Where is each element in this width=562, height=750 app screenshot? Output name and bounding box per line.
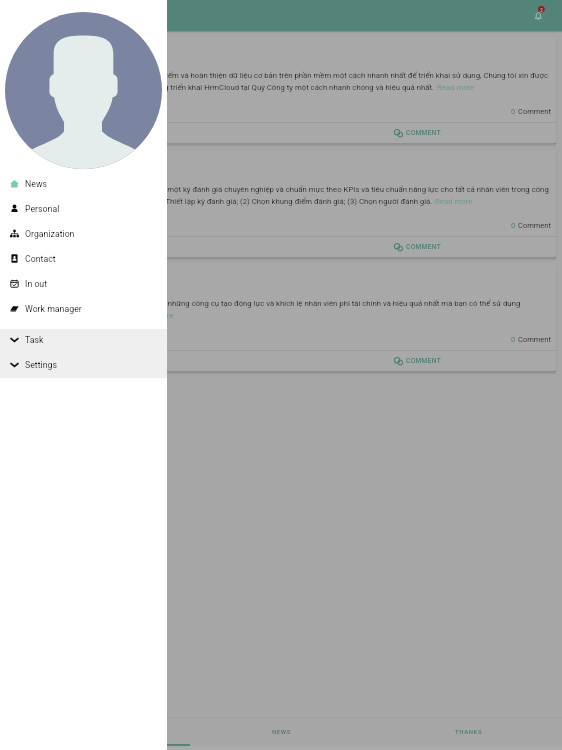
staticText: 0: [511, 221, 518, 230]
staticText: NEWS: [272, 728, 291, 735]
staticText: 0: [511, 335, 518, 344]
staticText: Để hỗ trợ Quý Khách hàng xây dựng được m…: [23, 185, 556, 194]
staticText: Work manager: [25, 304, 82, 314]
button[interactable]: Settings: [0, 352, 167, 377]
staticText: Comment: [518, 335, 551, 344]
button[interactable]: Contact: [0, 246, 167, 271]
button[interactable]: News: [0, 171, 167, 196]
staticText: COMMENT: [406, 243, 442, 251]
button[interactable]: LIKE: [5, 123, 280, 143]
button[interactable]: In out: [0, 271, 167, 296]
button[interactable]: Để giúp Quý Khách hàng rà soát, bổ sung,…: [5, 37, 556, 143]
staticText: Personal: [25, 204, 60, 214]
staticText: News: [25, 179, 47, 189]
button[interactable]: Read more: [136, 311, 174, 320]
staticText: Settings: [25, 360, 57, 370]
staticText: Để giúp Quý Khách hàng rà soát, bổ sung,…: [18, 71, 556, 80]
staticText: ty, Chúng tôi hướng dẫn các bước sau: (1…: [21, 197, 435, 206]
staticText: 0: [511, 107, 518, 116]
button[interactable]: Work manager: [0, 296, 167, 321]
staticText: THANKS: [455, 728, 483, 735]
button[interactable]: THANKS: [375, 717, 562, 746]
staticText: Task: [25, 335, 44, 345]
button[interactable]: Read more: [435, 197, 473, 206]
staticText: Lương thưởng và phúc lợi luôn là một tro…: [18, 299, 556, 308]
button[interactable]: NEWS: [188, 717, 375, 746]
button[interactable]: ALL: [0, 717, 188, 746]
button[interactable]: COMMENT: [280, 351, 556, 371]
button[interactable]: LIKE: [5, 351, 280, 371]
button[interactable]: COMMENT: [280, 237, 556, 257]
button[interactable]: LIKE: [5, 237, 280, 257]
staticText: In out: [25, 279, 48, 289]
staticText: COMMENT: [406, 357, 442, 365]
staticText: Comment: [518, 107, 551, 116]
staticText: Organization: [25, 229, 75, 239]
button[interactable]: Notifications: [529, 4, 549, 24]
staticText: 2: [540, 7, 543, 13]
button[interactable]: Lương thưởng và phúc lợi luôn là một tro…: [5, 265, 556, 371]
staticText: Contact: [25, 254, 56, 264]
staticText: LIKE: [141, 129, 156, 137]
staticText: hướng dẫn Quý Công ty các bước áp dụng s…: [5, 83, 437, 92]
staticText: COMMENT: [406, 129, 442, 137]
button[interactable]: COMMENT: [280, 123, 556, 143]
button[interactable]: Organization: [0, 221, 167, 246]
button[interactable]: Read more: [437, 83, 475, 92]
button[interactable]: Task: [0, 327, 167, 352]
button[interactable]: Để hỗ trợ Quý Khách hàng xây dựng được m…: [5, 151, 556, 257]
staticText: Comment: [518, 221, 551, 230]
button[interactable]: Personal: [0, 196, 167, 221]
